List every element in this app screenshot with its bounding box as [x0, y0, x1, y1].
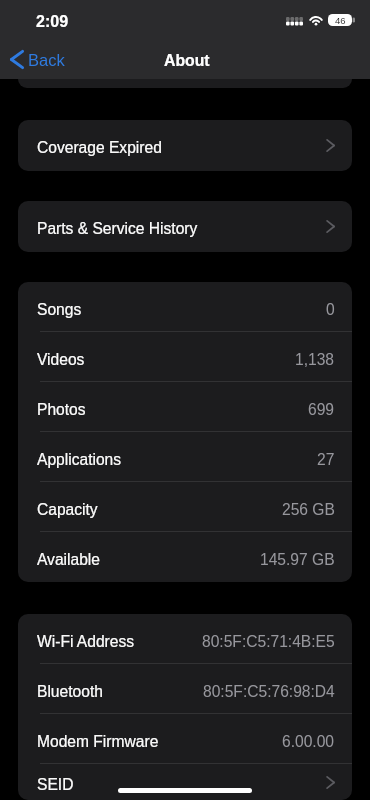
- staticText: Applications: [37, 451, 122, 468]
- staticText: Songs: [37, 301, 82, 318]
- button[interactable]: Songs: [18, 282, 352, 332]
- staticText: Bluetooth: [37, 683, 103, 700]
- staticText: Photos: [37, 401, 86, 418]
- staticText: Capacity: [37, 501, 98, 518]
- button[interactable]: Available: [18, 532, 352, 582]
- button[interactable]: Photos: [18, 382, 352, 432]
- staticText: 80:5F:C5:76:98:D4: [203, 683, 335, 700]
- staticText: Coverage Expired: [37, 139, 162, 156]
- staticText: 2:09: [36, 13, 69, 31]
- button[interactable]: Capacity: [18, 482, 352, 532]
- button[interactable]: SEID: [18, 764, 352, 800]
- staticText: SEID: [37, 776, 74, 793]
- staticText: 256 GB: [282, 501, 335, 518]
- button[interactable]: Back: [0, 47, 75, 72]
- staticText: Modem Firmware: [37, 733, 159, 750]
- staticText: 1,138: [295, 351, 335, 368]
- staticText: 27: [317, 451, 335, 468]
- button[interactable]: Modem Firmware: [18, 714, 352, 764]
- staticText: 80:5F:C5:71:4B:E5: [202, 633, 335, 650]
- staticText: Parts & Service History: [37, 220, 198, 237]
- button[interactable]: Bluetooth: [18, 664, 352, 714]
- staticText: Back: [28, 51, 65, 69]
- staticText: 0: [326, 301, 335, 318]
- button[interactable]: Videos: [18, 332, 352, 382]
- staticText: 46: [335, 15, 346, 26]
- button[interactable]: Wi-Fi Address: [18, 614, 352, 664]
- button[interactable]: Parts & Service History: [18, 201, 352, 252]
- button[interactable]: Applications: [18, 432, 352, 482]
- staticText: Available: [37, 551, 100, 568]
- staticText: 145.97 GB: [260, 551, 335, 568]
- staticText: Videos: [37, 351, 85, 368]
- staticText: About: [164, 52, 210, 70]
- button[interactable]: Coverage Expired: [18, 120, 352, 171]
- staticText: 6.00.00: [282, 733, 335, 750]
- staticText: Wi-Fi Address: [37, 633, 135, 650]
- staticText: 699: [308, 401, 335, 418]
